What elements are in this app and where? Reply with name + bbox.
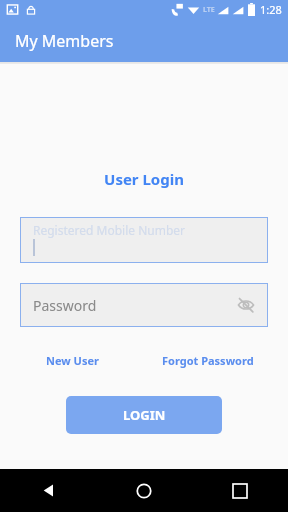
staticText: Password <box>33 296 97 315</box>
button[interactable]: Forgot Password <box>160 350 256 371</box>
button[interactable]: LOGIN <box>66 396 222 434</box>
button[interactable]: New User <box>44 350 101 371</box>
button[interactable]: Home <box>96 469 192 512</box>
button[interactable]: Back <box>0 469 96 512</box>
staticText: LTE <box>203 5 215 15</box>
staticText: 1:28 <box>260 2 282 17</box>
staticText: User Login <box>0 169 288 189</box>
staticText: Forgot Password <box>162 353 254 368</box>
button[interactable]: Password <box>20 283 268 327</box>
button[interactable]: Recent apps <box>192 469 288 512</box>
button[interactable]: Show password <box>232 291 260 319</box>
staticText: My Members <box>15 30 114 52</box>
staticText: LOGIN <box>123 406 166 424</box>
staticText: Registered Mobile Number <box>33 222 186 238</box>
staticText: New User <box>46 353 99 368</box>
button[interactable]: Registered Mobile Number <box>20 217 268 263</box>
